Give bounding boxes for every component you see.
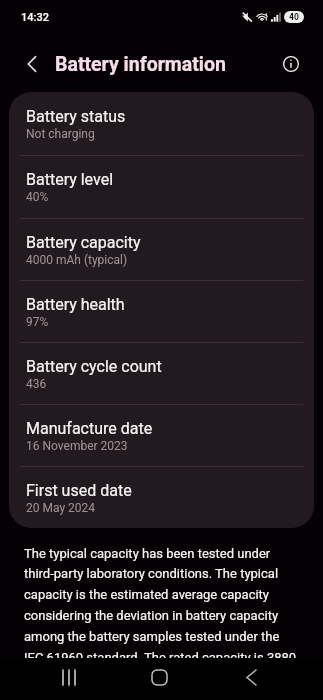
staticText: 97% bbox=[26, 315, 49, 329]
staticText: 20 May 2024 bbox=[26, 501, 96, 515]
staticText: 40% bbox=[26, 190, 49, 204]
staticText: Not charging bbox=[26, 127, 95, 141]
staticText: Battery capacity bbox=[26, 233, 141, 252]
staticText: First used date bbox=[26, 481, 132, 500]
button[interactable]: Battery health bbox=[9, 280, 314, 342]
button[interactable]: Information bbox=[276, 49, 306, 79]
staticText: 4000 mAh (typical) bbox=[26, 253, 128, 267]
button[interactable]: Manufacture date bbox=[9, 404, 314, 466]
staticText: 14:32 bbox=[21, 11, 49, 24]
staticText: Battery level bbox=[26, 170, 114, 189]
button[interactable]: Recent apps bbox=[45, 656, 93, 698]
staticText: Battery health bbox=[26, 295, 125, 314]
button[interactable]: Battery capacity bbox=[9, 218, 314, 280]
staticText: Battery status bbox=[26, 107, 126, 126]
button[interactable]: Battery level bbox=[9, 155, 314, 218]
staticText: 16 November 2023 bbox=[26, 439, 128, 453]
staticText: 40 bbox=[289, 12, 299, 22]
staticText: Battery cycle count bbox=[26, 357, 162, 376]
button[interactable]: Navigate up bbox=[10, 42, 54, 86]
staticText: 436 bbox=[26, 377, 47, 391]
button[interactable]: Back bbox=[227, 656, 275, 698]
staticText: Battery information bbox=[55, 53, 226, 76]
button[interactable]: Home bbox=[135, 656, 183, 698]
button[interactable]: Battery cycle count bbox=[9, 342, 314, 404]
staticText: Manufacture date bbox=[26, 419, 153, 438]
button[interactable]: Battery status bbox=[9, 92, 314, 155]
button[interactable]: First used date bbox=[9, 466, 314, 528]
staticText: The typical capacity has been tested und… bbox=[24, 546, 299, 686]
